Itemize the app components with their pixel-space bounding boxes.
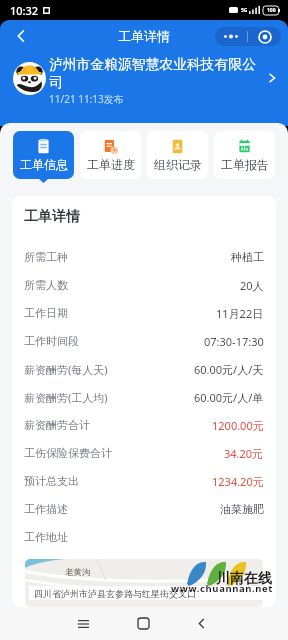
- staticText: 工作日期: [24, 306, 68, 320]
- staticText: 100: [267, 7, 276, 14]
- staticText: 11/21 11:13发布: [49, 92, 124, 106]
- staticText: 11月22日: [216, 306, 264, 321]
- staticText: 工单详情: [118, 28, 170, 44]
- button[interactable]: 工单进度: [80, 131, 141, 179]
- staticText: 老黄沟: [65, 567, 91, 578]
- staticText: 工单报告: [221, 157, 269, 172]
- button[interactable]: 工单报告: [214, 131, 275, 179]
- button[interactable]: Map: [25, 559, 263, 607]
- staticText: 34.20元: [224, 446, 264, 461]
- staticText: 薪资酬劳合计: [24, 418, 90, 432]
- staticText: 10:32: [10, 3, 39, 18]
- staticText: 工单信息: [20, 157, 68, 172]
- staticText: 60.00元/人/单: [194, 390, 264, 405]
- button[interactable]: 泸州市金粮源智慧农业科技有限公司: [0, 52, 288, 104]
- staticText: 川南在线: [216, 570, 272, 588]
- staticText: 预计总支出: [24, 474, 79, 488]
- button[interactable]: More options: [215, 27, 247, 46]
- staticText: 20人: [240, 278, 264, 293]
- button[interactable]: Close: [248, 27, 281, 46]
- staticText: 工伤保险保费合计: [24, 446, 112, 460]
- staticText: 工单进度: [87, 157, 135, 172]
- staticText: 四川省泸州市泸县玄参路与红星街交叉口: [34, 588, 196, 599]
- staticText: 薪资酬劳(工人均): [24, 390, 108, 405]
- button[interactable]: Home: [128, 607, 158, 640]
- staticText: 60.00元/人/天: [194, 362, 264, 377]
- button[interactable]: Back: [186, 607, 216, 640]
- staticText: 工作地址: [24, 530, 68, 544]
- staticText: 1234.20元: [212, 474, 264, 489]
- staticText: 泸州市金粮源智慧农业科技有限公司: [49, 56, 264, 91]
- staticText: 所需工种: [24, 250, 68, 264]
- staticText: 工作描述: [24, 502, 68, 516]
- staticText: 07:30-17:30: [204, 334, 264, 349]
- staticText: 1200.00元: [212, 418, 264, 433]
- staticText: 所需人数: [24, 278, 68, 292]
- staticText: 5G: [241, 7, 248, 14]
- staticText: 组织记录: [154, 157, 202, 172]
- staticText: 薪资酬劳(每人天): [24, 362, 108, 377]
- button[interactable]: Back: [10, 25, 32, 47]
- button[interactable]: 工单信息: [13, 131, 74, 179]
- staticText: www.chuannan.net: [171, 582, 274, 595]
- staticText: 工单详情: [24, 208, 80, 226]
- staticText: 种植工: [231, 250, 264, 264]
- staticText: 工作时间段: [24, 334, 79, 348]
- staticText: 油菜施肥: [220, 502, 264, 516]
- button[interactable]: 组织记录: [147, 131, 208, 179]
- button[interactable]: Recents: [68, 607, 98, 640]
